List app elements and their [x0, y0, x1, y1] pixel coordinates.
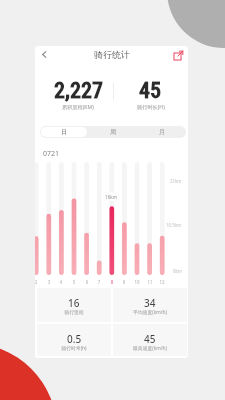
staticText: 0.5: [67, 332, 82, 346]
staticText: 21km: [170, 178, 182, 184]
button[interactable]: Share: [169, 46, 187, 64]
staticText: 4: [56, 279, 66, 285]
staticText: 骑行里程: [64, 309, 84, 315]
button[interactable]: Back: [36, 46, 53, 63]
staticText: 16km: [105, 194, 118, 200]
button[interactable]: 0.5: [37, 324, 111, 356]
button[interactable]: 周: [89, 127, 136, 137]
staticText: 12: [157, 279, 167, 285]
button[interactable]: 34: [113, 288, 187, 322]
staticText: 34: [144, 296, 156, 310]
staticText: 6: [82, 279, 92, 285]
staticText: 最高速度(km/h): [133, 345, 167, 352]
staticText: 2: [35, 279, 41, 285]
staticText: 2,227: [54, 78, 103, 104]
staticText: 10: [132, 279, 142, 285]
staticText: 9: [119, 279, 129, 285]
staticText: 骑行时常(h): [61, 345, 87, 352]
staticText: 3: [44, 279, 54, 285]
staticText: 7: [94, 279, 104, 285]
staticText: 平均速度(km/h): [133, 309, 167, 316]
staticText: 45: [144, 332, 156, 346]
staticText: 0km: [173, 268, 182, 274]
button[interactable]: 45: [113, 324, 187, 356]
staticText: 16: [68, 296, 80, 310]
staticText: 0721: [43, 149, 60, 159]
button[interactable]: 月: [138, 127, 185, 137]
button[interactable]: 日: [41, 127, 87, 137]
staticText: 骑行统计: [94, 49, 130, 60]
staticText: 月: [159, 128, 165, 136]
staticText: 45: [139, 78, 162, 104]
staticText: 周: [110, 128, 116, 136]
staticText: 日: [61, 128, 67, 136]
staticText: 骑行时长(H): [137, 103, 165, 110]
staticText: 累积里程(KM): [62, 103, 94, 110]
staticText: 8: [107, 279, 117, 285]
staticText: 10.5km: [166, 222, 182, 228]
button[interactable]: 16: [37, 288, 111, 322]
staticText: 11: [145, 279, 155, 285]
staticText: 5: [69, 279, 79, 285]
